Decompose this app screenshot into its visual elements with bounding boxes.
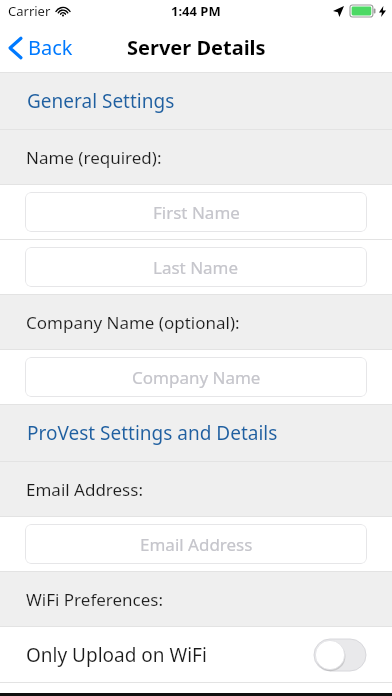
button[interactable]: Email Address	[25, 524, 367, 564]
staticText: General Settings	[27, 88, 175, 114]
staticText: Email Address	[140, 533, 253, 556]
staticText: First Name	[153, 201, 240, 224]
staticText: Company Name (optional):	[26, 311, 240, 334]
button[interactable]: Only Upload on WiFi	[0, 627, 392, 682]
staticText: Email Address:	[26, 478, 143, 501]
button[interactable]: First Name	[25, 192, 367, 232]
button[interactable]: Last Name	[25, 247, 367, 287]
staticText: Only Upload on WiFi	[26, 642, 207, 668]
staticText: Last Name	[153, 256, 239, 279]
staticText: 1:44 PM	[171, 2, 221, 20]
other: Only Upload on WiFi toggle	[314, 639, 366, 671]
staticText: Company Name	[132, 366, 261, 389]
staticText: Name (required):	[26, 146, 162, 169]
button[interactable]: Company Name	[25, 357, 367, 397]
staticText: Server Details	[127, 34, 266, 61]
staticText: Carrier	[8, 2, 51, 20]
staticText: ProVest Settings and Details	[27, 420, 278, 446]
staticText: Back	[28, 34, 73, 61]
staticText: WiFi Preferences:	[26, 588, 164, 611]
button[interactable]: Back	[0, 28, 83, 67]
